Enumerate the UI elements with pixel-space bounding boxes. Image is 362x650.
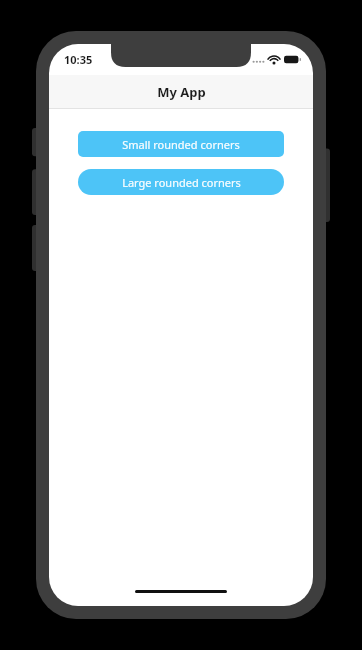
staticText: Large rounded corners [122,175,241,190]
staticText: Small rounded corners [122,137,240,152]
button[interactable]: Small rounded corners [78,131,284,157]
button[interactable]: Large rounded corners [78,169,284,195]
staticText: My App [157,83,206,101]
staticText: 10:35 [64,52,93,67]
